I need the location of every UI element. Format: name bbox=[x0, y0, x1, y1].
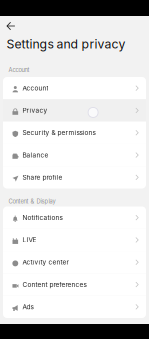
staticText: Balance bbox=[22, 151, 48, 159]
staticText: Content & Display bbox=[8, 198, 55, 205]
button[interactable]: Content preferences bbox=[3, 273, 146, 296]
staticText: Account bbox=[22, 84, 48, 92]
staticText: Notifications bbox=[22, 214, 62, 221]
staticText: Content preferences bbox=[22, 281, 86, 288]
button[interactable]: Privacy bbox=[3, 99, 146, 122]
button[interactable]: Balance bbox=[3, 144, 146, 166]
staticText: Security & permissions bbox=[22, 129, 95, 137]
staticText: Share profile bbox=[22, 173, 62, 181]
button[interactable]: Account bbox=[3, 77, 146, 99]
button[interactable]: Ads bbox=[3, 296, 146, 318]
staticText: LIVE bbox=[22, 236, 36, 244]
staticText: Ads bbox=[22, 303, 33, 311]
staticText: Privacy bbox=[22, 106, 47, 114]
button[interactable]: LIVE bbox=[3, 229, 146, 251]
button[interactable]: Share profile bbox=[3, 166, 146, 188]
staticText: Account bbox=[8, 66, 29, 73]
staticText: Activity center bbox=[22, 258, 68, 266]
staticText: Settings and privacy bbox=[7, 37, 126, 51]
button[interactable]: Notifications bbox=[3, 206, 146, 229]
button[interactable]: Security & permissions bbox=[3, 122, 146, 144]
button[interactable]: Back bbox=[2, 18, 19, 33]
button[interactable]: Activity center bbox=[3, 251, 146, 273]
